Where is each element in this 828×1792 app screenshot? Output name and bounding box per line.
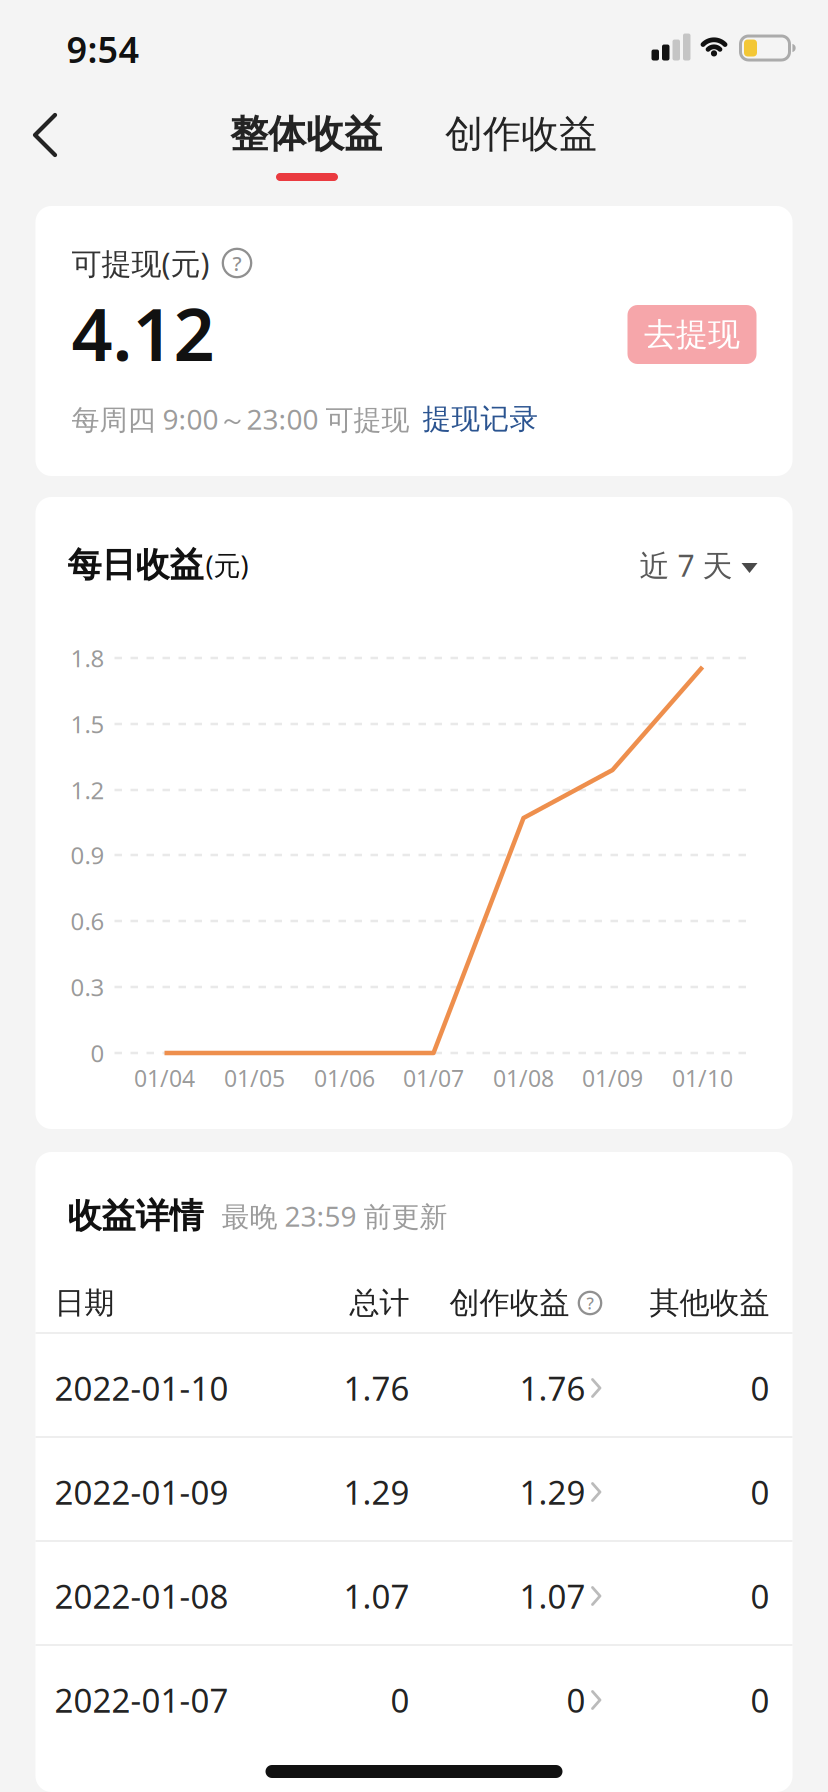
- staticText: ?: [232, 249, 241, 277]
- button[interactable]: 整体收益: [230, 111, 382, 157]
- button[interactable]: Back: [31, 112, 59, 158]
- staticText: 整体收益: [230, 111, 382, 157]
- staticText: ?: [586, 1292, 593, 1314]
- staticText: 01/10: [672, 1063, 733, 1093]
- staticText: 0: [750, 1574, 769, 1618]
- staticText: 1.76: [519, 1366, 585, 1410]
- staticText: 01/09: [582, 1063, 643, 1093]
- staticText: 日期: [54, 1285, 114, 1321]
- staticText: 提现记录: [422, 401, 538, 436]
- staticText: 2022-01-07: [54, 1678, 228, 1722]
- staticText: 1.5: [70, 708, 104, 740]
- staticText: 1.07: [519, 1574, 585, 1618]
- staticText: 0: [90, 1037, 104, 1069]
- staticText: 0.3: [70, 971, 104, 1003]
- staticText: 每周四 9:00～23:00 可提现: [71, 400, 409, 438]
- staticText: 0: [750, 1678, 769, 1722]
- staticText: 0: [566, 1678, 585, 1722]
- staticText: 0: [750, 1366, 769, 1410]
- staticText: 01/05: [224, 1063, 285, 1093]
- staticText: 2022-01-08: [54, 1574, 228, 1618]
- button[interactable]: 2022-01-10: [35, 1336, 792, 1440]
- button[interactable]: 2022-01-08: [35, 1544, 792, 1648]
- staticText: 0.9: [70, 839, 104, 871]
- staticText: 01/08: [493, 1063, 554, 1093]
- staticText: 总计: [349, 1285, 409, 1321]
- staticText: 1.07: [343, 1574, 409, 1618]
- button[interactable]: 近 7 天: [639, 545, 757, 585]
- staticText: 收益详情: [67, 1195, 203, 1237]
- staticText: 0: [390, 1678, 409, 1722]
- staticText: 9:54: [66, 25, 139, 73]
- staticText: 创作收益: [445, 111, 597, 157]
- staticText: 1.8: [70, 642, 104, 674]
- staticText: 01/07: [403, 1063, 464, 1093]
- button[interactable]: 2022-01-09: [35, 1440, 792, 1544]
- staticText: 2022-01-10: [54, 1366, 228, 1410]
- staticText: 创作收益: [449, 1285, 569, 1321]
- staticText: 去提现: [644, 315, 740, 354]
- staticText: 每日收益: [67, 544, 203, 586]
- staticText: 最晚 23:59 前更新: [221, 1197, 447, 1235]
- staticText: 1.76: [343, 1366, 409, 1410]
- staticText: 2022-01-09: [54, 1470, 228, 1514]
- button[interactable]: 提现记录: [422, 401, 538, 436]
- staticText: (元): [205, 547, 248, 583]
- staticText: 0: [750, 1470, 769, 1514]
- button[interactable]: 2022-01-07: [35, 1648, 792, 1752]
- staticText: 1.29: [519, 1470, 585, 1514]
- staticText: 1.29: [343, 1470, 409, 1514]
- staticText: 近 7 天: [639, 545, 732, 585]
- button[interactable]: 创作收益: [445, 111, 597, 157]
- staticText: 1.2: [70, 774, 104, 806]
- staticText: 01/06: [314, 1063, 375, 1093]
- staticText: 4.12: [71, 285, 214, 381]
- button[interactable]: 去提现: [627, 305, 756, 364]
- staticText: 0.6: [70, 905, 104, 937]
- staticText: 01/04: [134, 1063, 195, 1093]
- staticText: 其他收益: [649, 1285, 769, 1321]
- staticText: 可提现(元): [71, 243, 209, 283]
